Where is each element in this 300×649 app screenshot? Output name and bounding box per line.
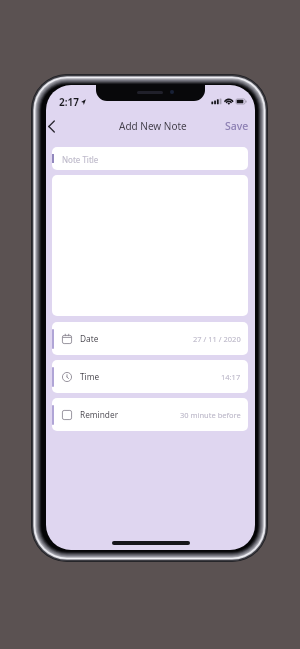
button[interactable]: Time <box>52 360 248 393</box>
button[interactable]: Reminder <box>52 398 248 431</box>
staticText: Add New Note <box>119 119 187 133</box>
staticText: 14:17 <box>221 372 241 382</box>
staticText: 2:17 <box>59 95 79 109</box>
staticText: Save <box>225 119 249 133</box>
staticText: Time <box>80 371 100 382</box>
button[interactable]: Back <box>46 115 62 137</box>
button[interactable]: Save <box>219 115 255 137</box>
button[interactable]: Date <box>52 322 248 355</box>
button[interactable]: Note Title <box>52 147 248 170</box>
staticText: 30 minute before <box>180 410 241 420</box>
staticText: Date <box>80 333 99 344</box>
staticText: Reminder <box>80 409 119 420</box>
staticText: 27 / 11 / 2020 <box>193 334 241 344</box>
staticText: Note Title <box>62 154 99 165</box>
